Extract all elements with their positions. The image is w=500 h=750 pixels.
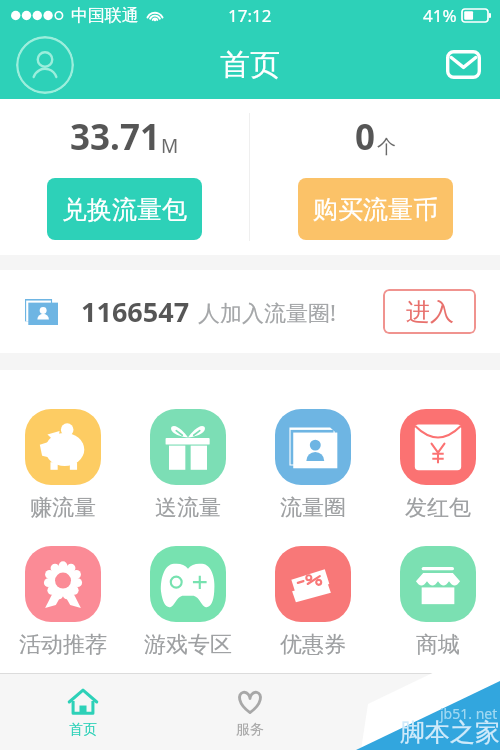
button[interactable]: 优惠券 [250,546,375,659]
staticText: 优惠券 [280,631,346,659]
button[interactable]: 发红包 [375,409,500,522]
button[interactable]: 活动推荐 [0,546,125,659]
staticText: 我的 [403,721,431,739]
staticText: 流量圈 [280,494,346,522]
staticText: 送流量 [155,494,221,522]
staticText: 活动推荐 [19,631,107,659]
staticText: 人加入流量圈! [198,297,336,327]
button[interactable]: 进入 [383,289,476,334]
staticText: 进入 [406,297,454,327]
staticText: 0 [355,113,376,161]
staticText: 个 [377,135,396,159]
staticText: 购买流量币 [313,194,438,225]
button[interactable]: 我的 [333,674,500,750]
staticText: 发红包 [405,494,471,522]
button[interactable]: 服务 [166,674,333,750]
staticText: 33.71 [70,113,160,161]
staticText: 商城 [416,631,460,659]
staticText: 17:12 [228,4,272,27]
staticText: 兑换流量包 [62,194,187,225]
staticText: 中国联通 [71,5,139,26]
button[interactable]: Profile [16,36,74,94]
staticText: 脚本之家 [400,717,500,748]
staticText: 首页 [69,721,97,739]
button[interactable]: 首页 [0,674,166,750]
staticText: 服务 [236,721,264,739]
button[interactable]: Messages [446,50,481,79]
staticText: 首页 [220,46,280,84]
staticText: 赚流量 [30,494,96,522]
staticText: 1166547 [81,293,190,330]
staticText: 41% [423,4,457,27]
button[interactable]: 商城 [375,546,500,659]
button[interactable]: 流量圈 [250,409,375,522]
staticText: M [161,133,179,159]
button[interactable]: 送流量 [125,409,250,522]
staticText: jb51. net [440,704,498,723]
button[interactable]: 购买流量币 [298,178,453,240]
button[interactable]: 赚流量 [0,409,125,522]
button[interactable]: 游戏专区 [125,546,250,659]
button[interactable]: 兑换流量包 [47,178,202,240]
staticText: 游戏专区 [144,631,232,659]
